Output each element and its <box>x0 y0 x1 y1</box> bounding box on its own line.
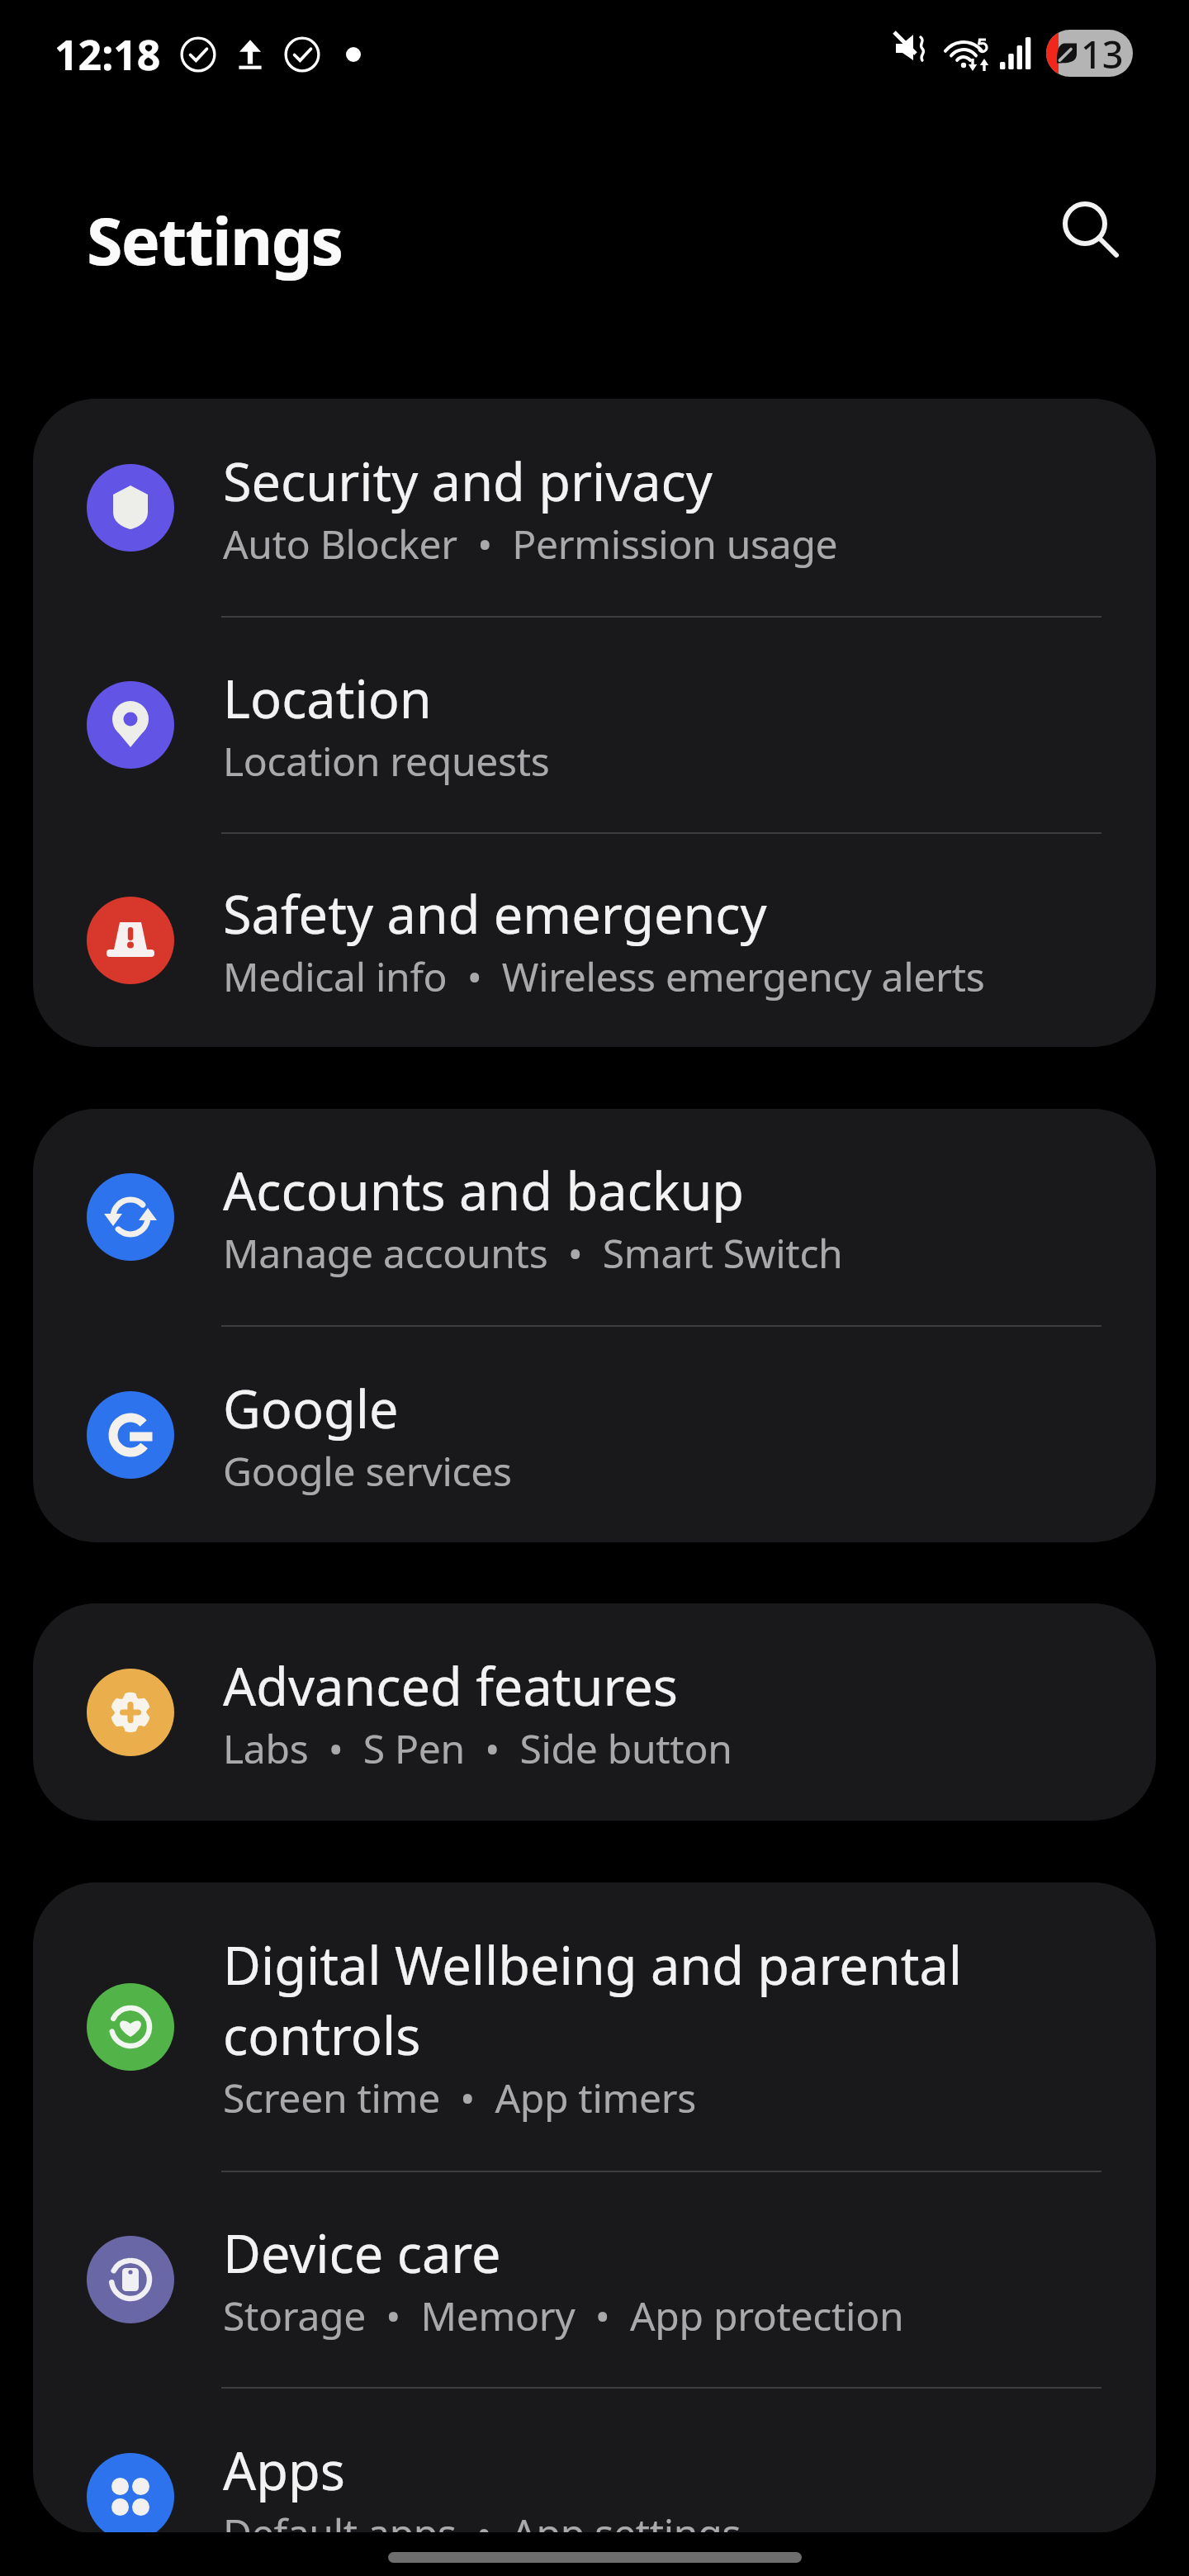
button[interactable]: Advanced features <box>33 1603 1156 1821</box>
button[interactable]: Device care <box>33 2172 1156 2387</box>
staticText: Location <box>223 663 432 733</box>
button[interactable]: Security and privacy <box>33 399 1156 616</box>
staticText: 13 <box>1081 30 1124 76</box>
button[interactable]: Search <box>1035 174 1151 290</box>
staticText: Digital Wellbeing and parental controls <box>223 1930 962 2070</box>
button[interactable]: Digital Wellbeing and parental controls <box>33 1882 1156 2171</box>
staticText: Device care <box>223 2218 501 2288</box>
staticText: Location requests <box>223 734 550 788</box>
staticText: Labs • S Pen • Side button <box>223 1721 732 1775</box>
staticText: Auto Blocker • Permission usage <box>223 517 838 571</box>
staticText: Safety and emergency <box>223 878 767 949</box>
staticText: Settings <box>87 196 343 285</box>
button[interactable]: Apps <box>33 2389 1156 2534</box>
button[interactable]: Location <box>33 618 1156 832</box>
button[interactable]: Google <box>33 1327 1156 1542</box>
staticText: Manage accounts • Smart Switch <box>223 1226 843 1280</box>
staticText: Medical info • Wireless emergency alerts <box>223 949 985 1003</box>
button[interactable]: Accounts and backup <box>33 1109 1156 1325</box>
staticText: Advanced features <box>223 1650 678 1721</box>
staticText: Google services <box>223 1444 512 1498</box>
staticText: Google <box>223 1373 399 1443</box>
button[interactable]: Safety and emergency <box>33 834 1156 1047</box>
staticText: Security and privacy <box>223 446 713 516</box>
staticText: Accounts and backup <box>223 1155 745 1225</box>
staticText: Default apps • App settings <box>223 2506 741 2534</box>
staticText: Screen time • App timers <box>223 2071 697 2124</box>
staticText: 12:18 <box>54 26 161 83</box>
staticText: Apps <box>223 2435 345 2505</box>
staticText: Storage • Memory • App protection <box>223 2289 904 2342</box>
